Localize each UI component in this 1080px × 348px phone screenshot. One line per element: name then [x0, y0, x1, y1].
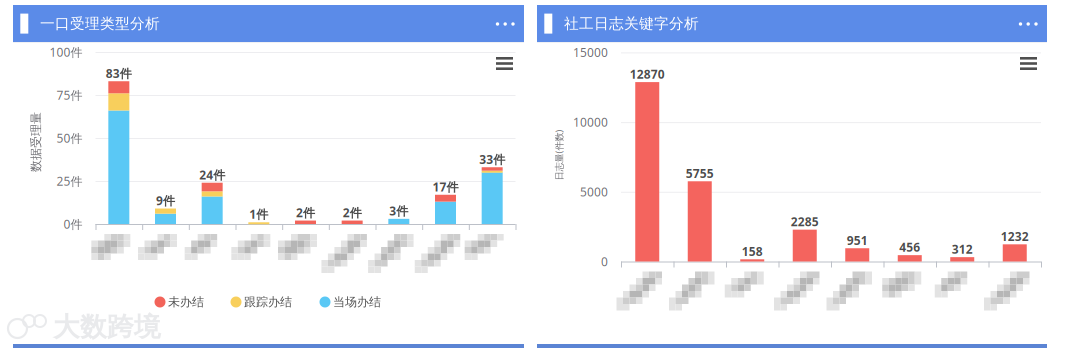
staticText: 1件 [249, 206, 268, 222]
staticText: 1232 [1001, 228, 1029, 244]
staticText: 10000 [573, 114, 608, 130]
button[interactable]: 当场办结 [319, 293, 403, 311]
button[interactable]: 未办结 [154, 293, 238, 311]
staticText: 跟踪办结 [244, 295, 292, 309]
staticText: 75件 [56, 87, 82, 103]
staticText: 456 [899, 239, 920, 255]
staticText: 15000 [573, 44, 608, 60]
staticText: 83件 [106, 65, 132, 81]
staticText: 一口受理类型分析 [40, 14, 160, 32]
staticText: 9件 [156, 193, 175, 208]
staticText: 5755 [686, 165, 714, 181]
staticText: 25件 [56, 173, 82, 189]
button[interactable]: 社工日志关键字分析 [537, 5, 1047, 42]
staticText: 当场办结 [333, 295, 381, 309]
staticText: 5000 [580, 184, 608, 200]
staticText: 社工日志关键字分析 [564, 14, 699, 32]
staticText: 17件 [432, 179, 458, 195]
staticText: 未办结 [168, 295, 204, 309]
button[interactable]: 一口受理类型分析 [13, 5, 524, 42]
staticText: 951 [847, 232, 868, 248]
staticText: 2285 [791, 214, 819, 230]
staticText: 50件 [56, 130, 82, 146]
staticText: 312 [952, 241, 973, 257]
staticText: 数据受理量 [6, 135, 66, 149]
staticText: 158 [742, 243, 763, 259]
staticText: 0件 [63, 216, 82, 232]
staticText: 3件 [389, 203, 408, 219]
staticText: 日志量(件数) [533, 149, 584, 161]
staticText: 大数跨境 [53, 311, 161, 343]
button[interactable]: 跟踪办结 [230, 293, 314, 311]
button[interactable]: Chart toolbox [496, 57, 513, 70]
staticText: 24件 [199, 167, 225, 183]
staticText: 0 [601, 253, 608, 269]
staticText: 33件 [479, 151, 505, 167]
button[interactable]: Chart toolbox [1020, 57, 1037, 70]
staticText: 100件 [49, 44, 82, 60]
staticText: 2件 [343, 205, 362, 220]
staticText: 2件 [296, 205, 315, 220]
staticText: 12870 [630, 66, 665, 82]
